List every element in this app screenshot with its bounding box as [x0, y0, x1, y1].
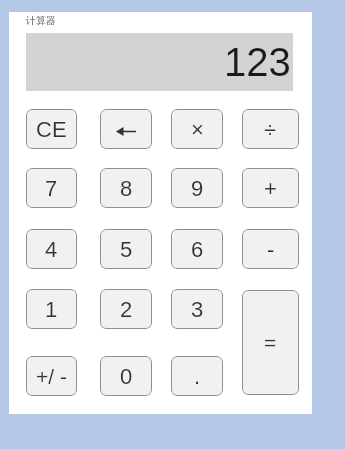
staticText: 2 [120, 297, 133, 322]
staticText: 8 [120, 176, 133, 201]
staticText: +/ - [36, 365, 67, 388]
button[interactable]: . [171, 356, 223, 396]
staticText: 9 [191, 176, 204, 201]
button[interactable]: CE [26, 109, 77, 149]
staticText: 3 [191, 297, 204, 322]
staticText: = [264, 331, 277, 354]
staticText: × [191, 117, 204, 142]
staticText: 123 [224, 40, 291, 85]
staticText: 5 [120, 237, 133, 262]
staticText: 计算器 [26, 14, 56, 27]
button[interactable]: 9 [171, 168, 223, 208]
button[interactable]: +/ - [26, 356, 77, 396]
staticText: 4 [45, 237, 58, 262]
button[interactable]: 7 [26, 168, 77, 208]
staticText: - [267, 237, 275, 262]
button[interactable]: = [242, 290, 299, 395]
button[interactable]: 1 [26, 289, 77, 329]
button[interactable]: 8 [100, 168, 152, 208]
button[interactable]: 2 [100, 289, 152, 329]
staticText: + [264, 176, 277, 201]
button[interactable]: 4 [26, 229, 77, 269]
staticText: 0 [120, 364, 133, 389]
button[interactable]: + [242, 168, 299, 208]
button[interactable] [100, 109, 152, 149]
button[interactable]: 0 [100, 356, 152, 396]
staticText: 1 [45, 297, 58, 322]
button[interactable]: 5 [100, 229, 152, 269]
staticText: 7 [45, 176, 58, 201]
staticText: . [194, 364, 201, 389]
button[interactable]: × [171, 109, 223, 149]
button[interactable]: 6 [171, 229, 223, 269]
button[interactable]: - [242, 229, 299, 269]
staticText: CE [36, 117, 67, 142]
staticText: 6 [191, 237, 204, 262]
staticText: ÷ [264, 117, 277, 142]
button[interactable]: 3 [171, 289, 223, 329]
button[interactable]: 123 [26, 33, 293, 91]
button[interactable]: ÷ [242, 109, 299, 149]
